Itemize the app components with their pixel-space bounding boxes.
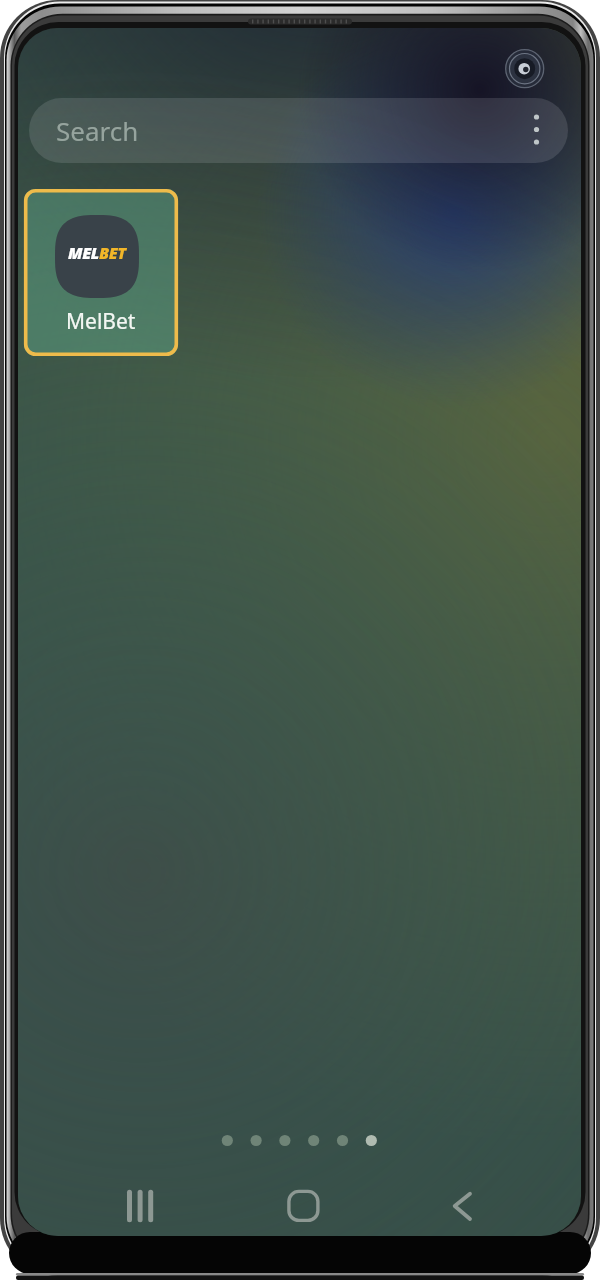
staticText: MEL [68,242,99,264]
staticText: MelBet [66,307,136,336]
staticText: BET [99,242,126,264]
button[interactable]: Search [29,98,568,163]
button[interactable]: MEL [24,189,178,356]
staticText: Search [56,113,139,148]
